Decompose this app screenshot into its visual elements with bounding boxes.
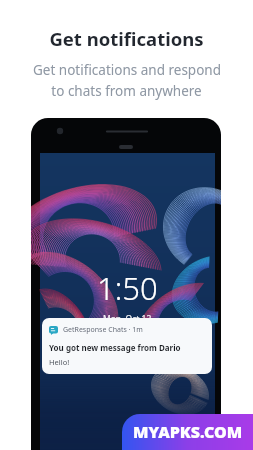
button[interactable]: GetResponse Chats · 1m <box>42 318 212 374</box>
staticText: to chats from anywhere <box>51 82 202 100</box>
button[interactable]: MYAPKS.COM <box>122 414 253 450</box>
staticText: GetResponse Chats · 1m <box>63 325 143 335</box>
staticText: Get notifications <box>49 26 204 51</box>
staticText: Hello! <box>49 357 70 367</box>
staticText: Mon, Oct 12 <box>103 313 152 325</box>
staticText: 1:50 <box>97 267 158 309</box>
staticText: Get notifications and respond <box>33 61 221 79</box>
staticText: You got new message from Dario <box>49 342 181 353</box>
staticText: MYAPKS.COM <box>133 421 243 443</box>
